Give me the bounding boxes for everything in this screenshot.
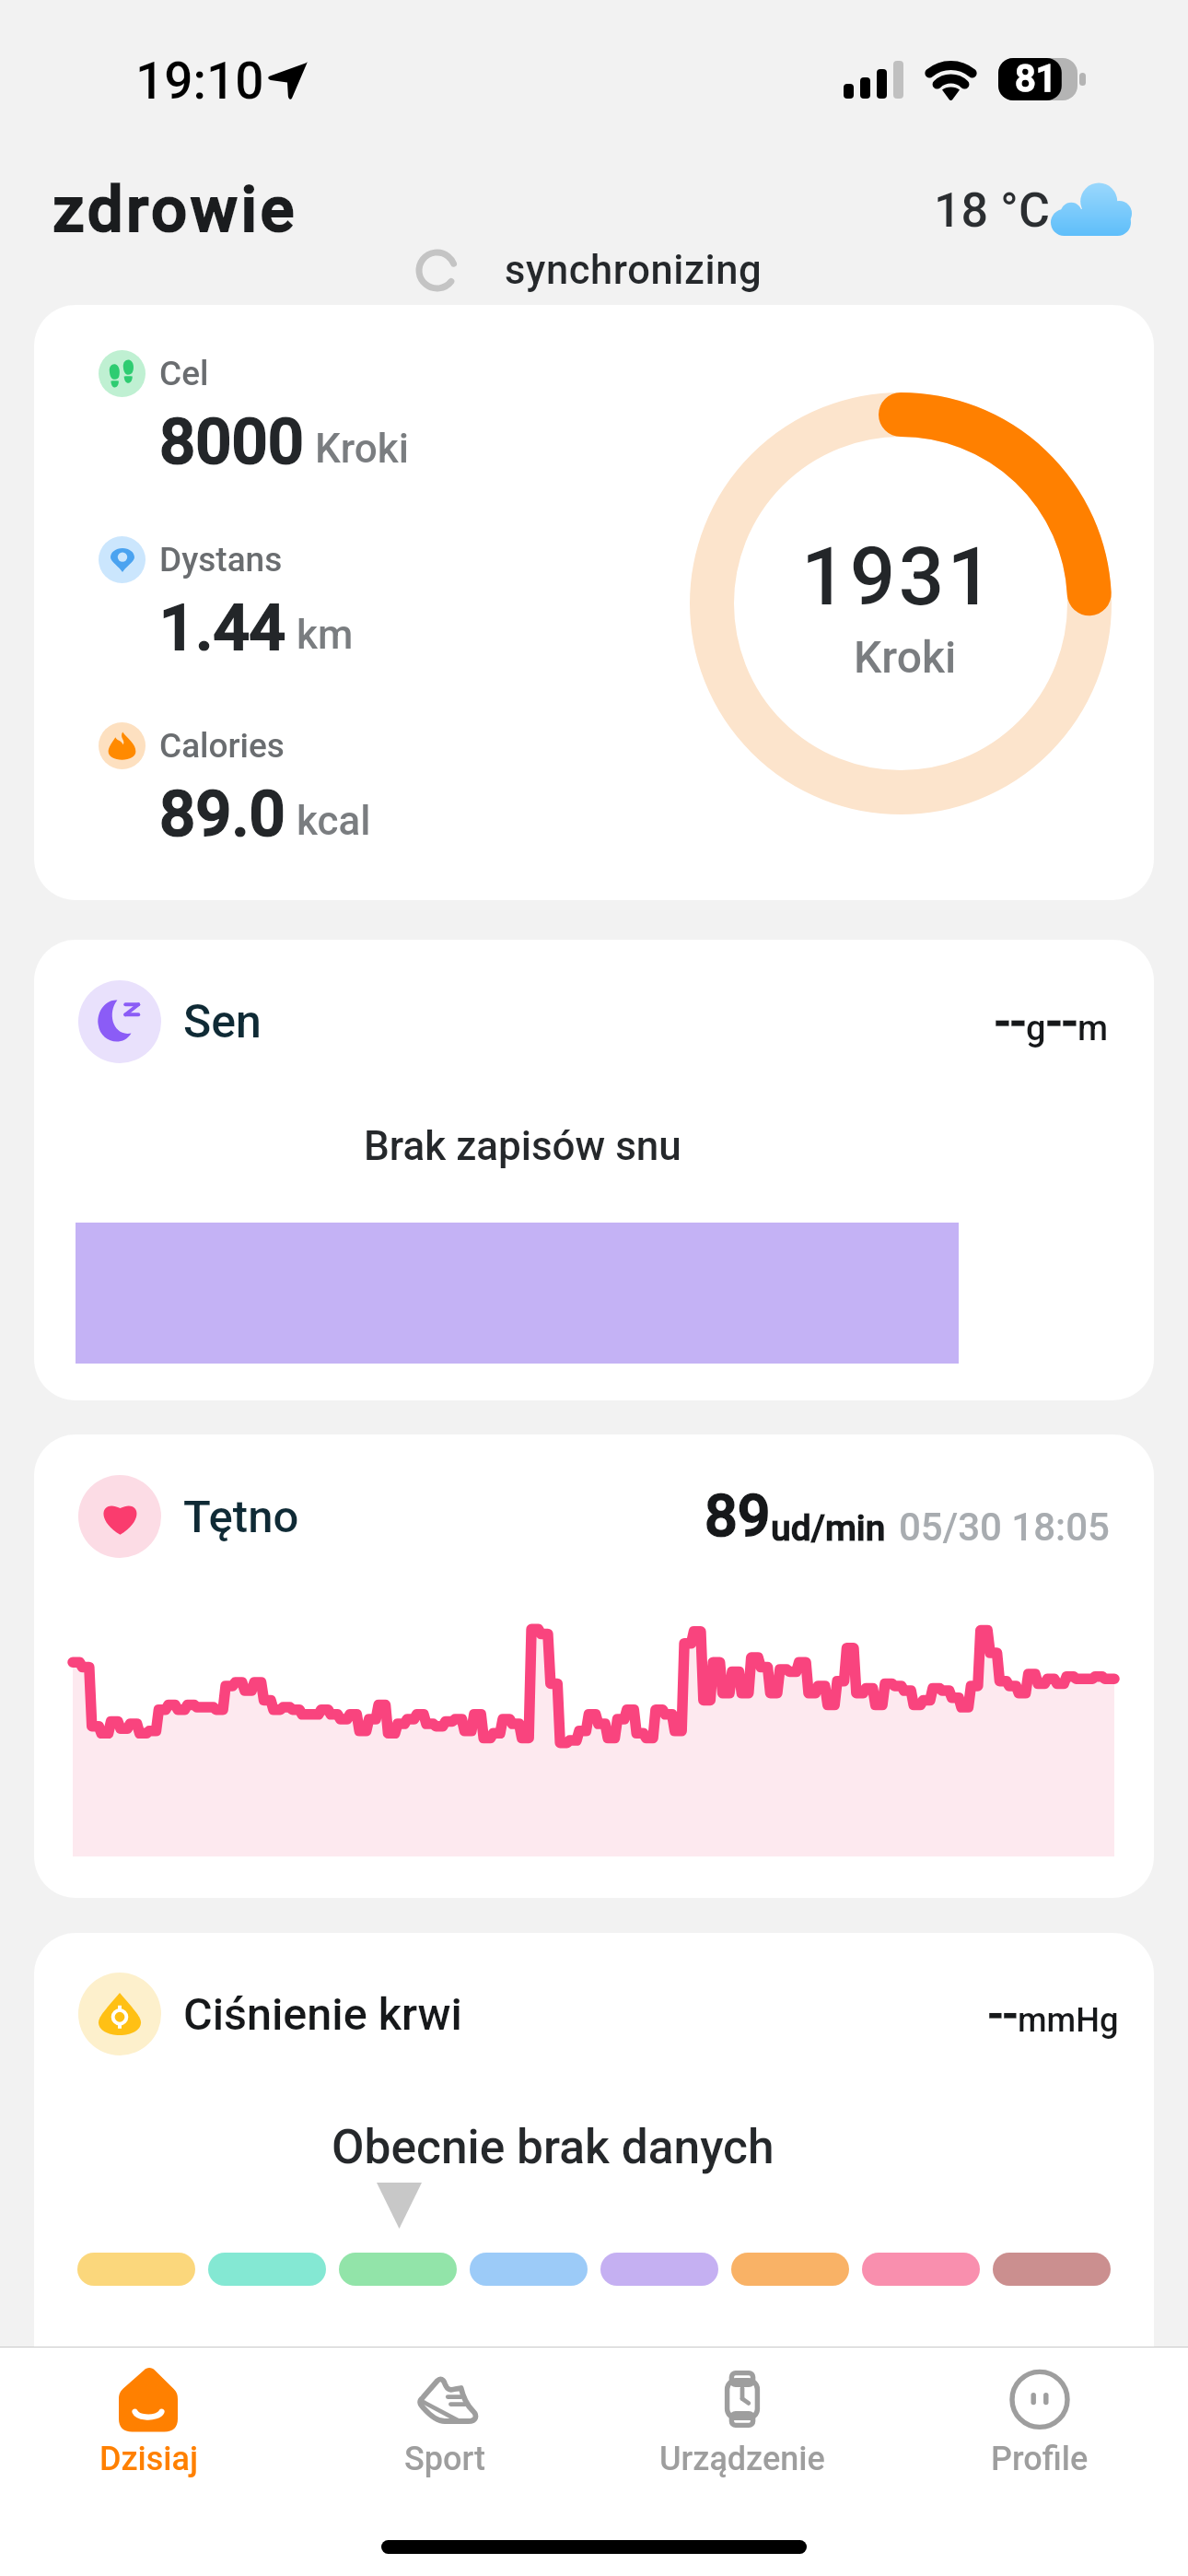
staticText: --	[988, 1989, 1018, 2040]
staticText: 81	[1015, 57, 1057, 100]
staticText: Ciśnienie krwi	[183, 1988, 462, 2041]
staticText: Urządzenie	[659, 2440, 825, 2478]
staticText: m	[1077, 1008, 1109, 1049]
button[interactable]: Profile	[891, 2348, 1188, 2510]
button[interactable]: Device	[593, 2348, 891, 2510]
staticText: 18 °C	[934, 182, 1050, 239]
staticText: Kroki	[854, 631, 957, 683]
staticText: 05/30 18:05	[899, 1505, 1110, 1550]
staticText: Tętno	[183, 1491, 299, 1543]
staticText: 1.44	[159, 591, 285, 665]
staticText: --	[995, 995, 1026, 1049]
staticText: 1931	[801, 530, 996, 624]
staticText: g	[1026, 1008, 1046, 1049]
staticText: synchronizing	[505, 247, 763, 294]
staticText: Obecnie brak danych	[332, 2119, 775, 2174]
staticText: Cel	[159, 354, 209, 393]
staticText: Brak zapisów snu	[364, 1122, 681, 1170]
button[interactable]: Ciśnienie krwi	[34, 1933, 1154, 2394]
staticText: 89.0	[159, 777, 285, 851]
staticText: Sen	[183, 995, 262, 1049]
staticText: mmHg	[1018, 2000, 1119, 2040]
button[interactable]: Today	[0, 2348, 297, 2510]
staticText: Sport	[404, 2440, 486, 2478]
button[interactable]: Sen	[34, 940, 1154, 1400]
staticText: Kroki	[315, 425, 409, 473]
staticText: Dystans	[159, 540, 283, 580]
staticText: 19:10	[135, 52, 264, 111]
staticText: kcal	[297, 797, 371, 845]
staticText: zdrowie	[52, 172, 297, 247]
staticText: 8000	[159, 404, 304, 479]
button[interactable]: Cel	[34, 305, 1154, 900]
staticText: 89	[705, 1482, 771, 1551]
button[interactable]: Sport	[297, 2348, 593, 2510]
staticText: Calories	[159, 726, 285, 766]
staticText: Profile	[991, 2440, 1089, 2478]
staticText: --	[1046, 995, 1077, 1049]
staticText: Dzisiaj	[99, 2440, 198, 2478]
staticText: km	[297, 611, 354, 659]
staticText: ud/min	[771, 1507, 886, 1550]
button[interactable]: Tętno	[34, 1434, 1154, 1898]
